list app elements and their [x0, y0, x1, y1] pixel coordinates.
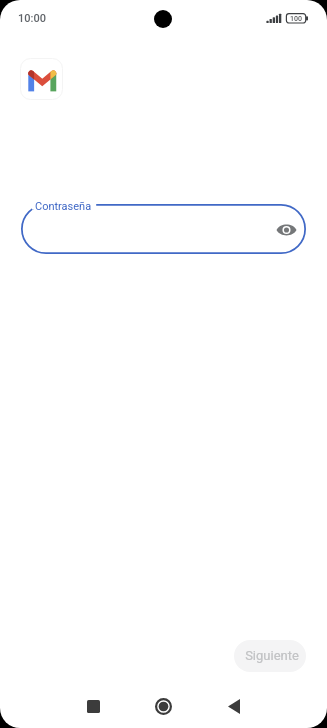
button[interactable]: Siguiente [234, 640, 306, 672]
button[interactable]: Recientes [79, 692, 107, 720]
button[interactable]: Inicio [149, 692, 177, 720]
staticText: 10:00 [18, 12, 46, 25]
staticText: Siguiente [245, 648, 299, 663]
button[interactable]: Atrás [220, 692, 248, 720]
staticText: Contraseña [35, 200, 92, 213]
staticText: 100 [290, 15, 302, 23]
button[interactable]: Mostrar contraseña [272, 215, 301, 244]
